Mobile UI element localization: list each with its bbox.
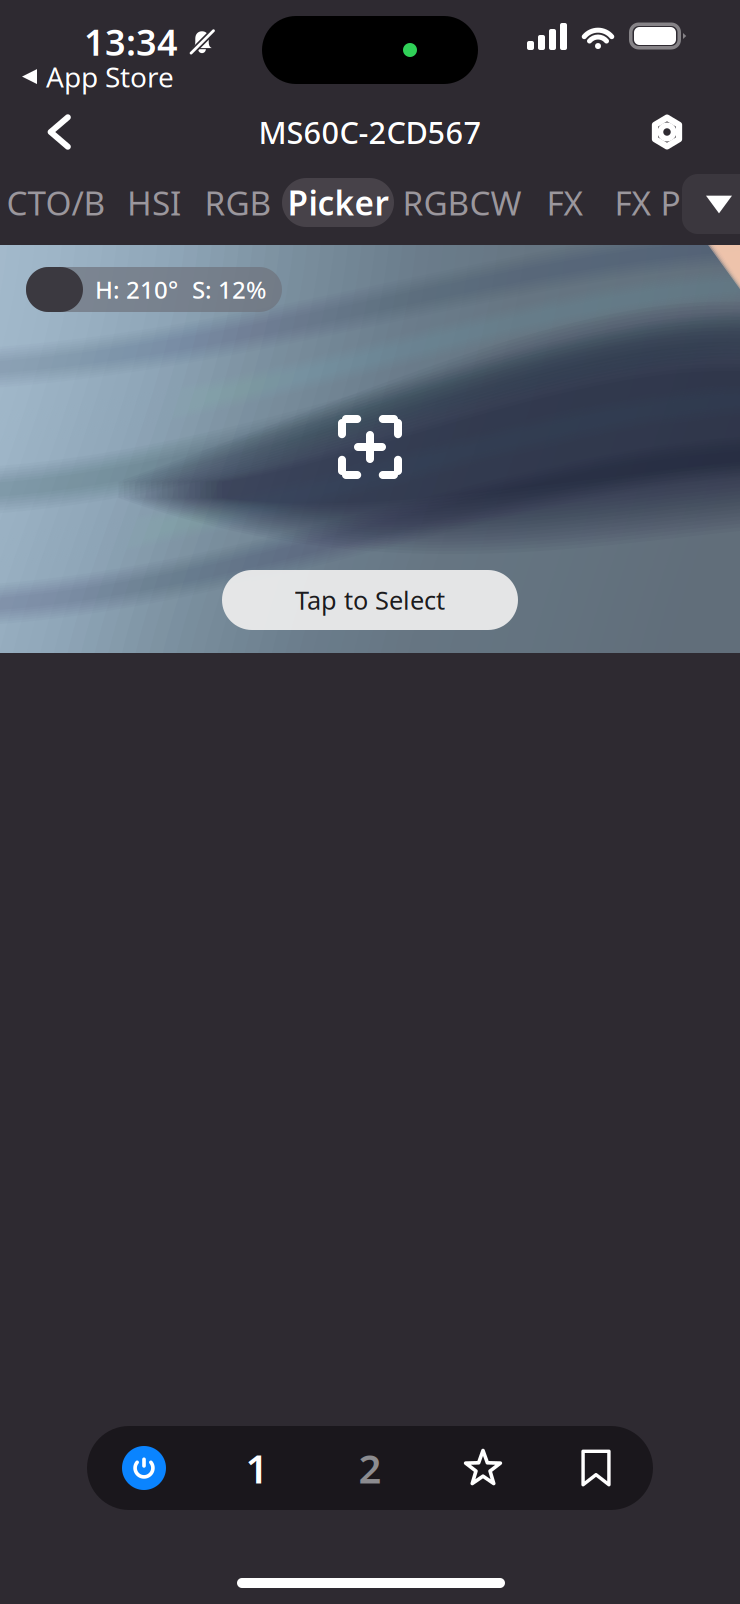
staticText: FX Pi: [614, 180, 689, 225]
staticText: 2: [358, 1441, 381, 1494]
button[interactable]: Picker: [282, 178, 394, 227]
staticText: RGBCW: [402, 180, 521, 225]
button[interactable]: Tap to Select: [222, 570, 518, 630]
staticText: App Store: [46, 58, 174, 95]
button[interactable]: Bookmark: [539, 1426, 652, 1510]
button[interactable]: FX Pi: [612, 178, 692, 227]
button[interactable]: Settings: [630, 96, 704, 168]
staticText: RGB: [204, 180, 271, 225]
staticText: 13:34: [84, 18, 178, 66]
staticText: 1: [245, 1441, 268, 1494]
staticText: S: 12%: [192, 274, 266, 305]
button[interactable]: More modes: [682, 174, 740, 234]
button[interactable]: HSI: [123, 178, 185, 227]
staticText: MS60C-2CD567: [258, 112, 481, 152]
button[interactable]: 2: [313, 1426, 426, 1510]
button[interactable]: Power: [87, 1426, 200, 1510]
staticText: FX: [546, 180, 583, 225]
button[interactable]: FX: [541, 178, 589, 227]
staticText: Picker: [287, 180, 388, 225]
button[interactable]: 1: [200, 1426, 313, 1510]
button[interactable]: Back: [22, 96, 96, 168]
staticText: CTO/B: [6, 180, 105, 225]
button[interactable]: RGBCW: [410, 178, 514, 227]
staticText: Tap to Select: [295, 583, 445, 617]
button[interactable]: RGB: [202, 178, 274, 227]
button[interactable]: CTO/B: [4, 178, 108, 227]
button[interactable]: Favourite: [426, 1426, 539, 1510]
button[interactable]: App Store: [22, 58, 174, 95]
staticText: H: 210°: [95, 274, 178, 305]
staticText: HSI: [127, 180, 181, 225]
